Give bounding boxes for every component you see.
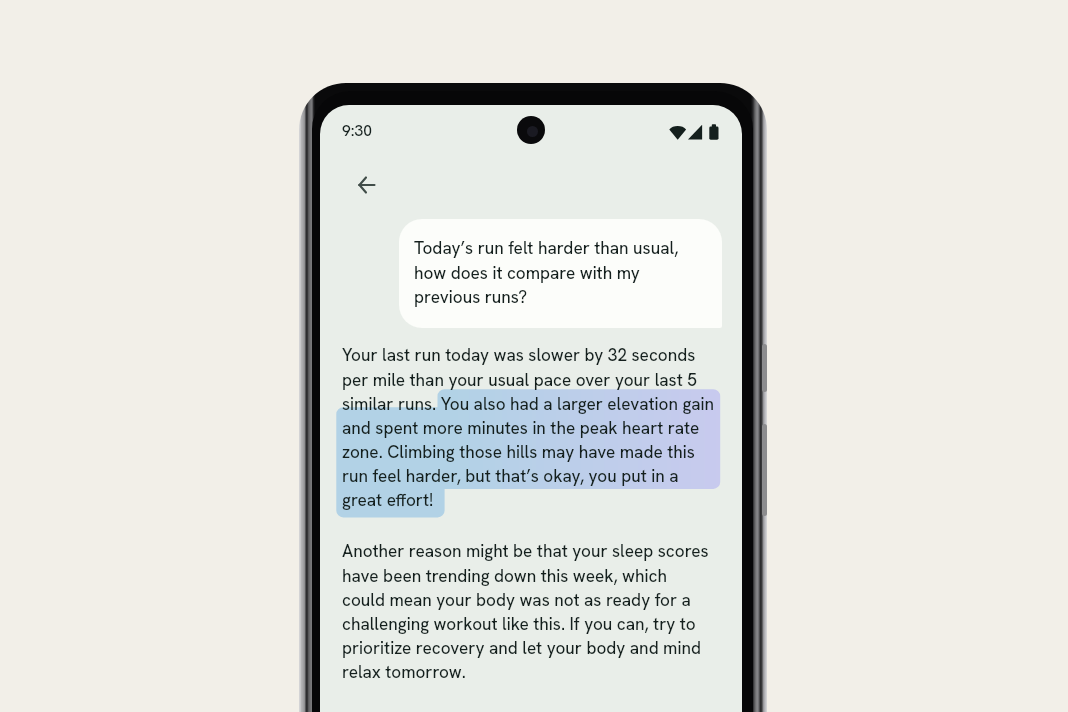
staticText: Your last run today was slower by 32 sec… [342,344,715,511]
staticText: Another reason might be that your sleep … [342,540,713,683]
staticText: Today’s run felt harder than usual, how … [414,237,706,308]
button[interactable]: Back [346,165,386,205]
button[interactable]: Today’s run felt harder than usual, how … [399,219,722,328]
other: Wi-Fi, cellular signal and battery statu… [669,124,719,140]
staticText: 9:30 [342,120,372,140]
